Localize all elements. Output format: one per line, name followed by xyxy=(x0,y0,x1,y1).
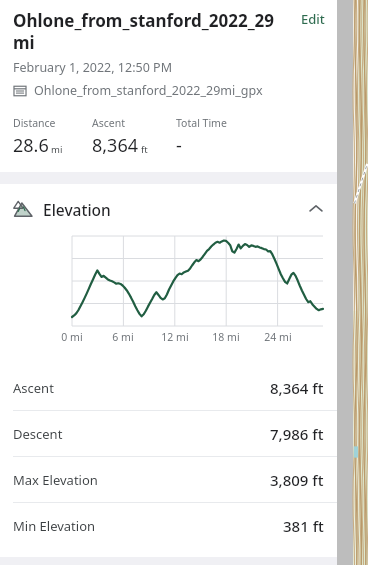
staticText: Ascent xyxy=(13,379,270,397)
staticText: Edit xyxy=(301,10,325,28)
button[interactable]: Elevation xyxy=(0,184,337,234)
staticText: ft xyxy=(141,143,148,156)
staticText: 12 mi xyxy=(161,330,189,344)
staticText: Ohlone_from_stanford_2022_29mi_gpx xyxy=(34,82,263,99)
staticText: - xyxy=(176,133,182,158)
staticText: 8,364 xyxy=(92,133,139,158)
staticText: 3,809 ft xyxy=(270,470,324,490)
staticText: 6 mi xyxy=(112,330,134,344)
staticText: mi xyxy=(51,143,63,156)
staticText: 18 mi xyxy=(212,330,240,344)
staticText: Distance xyxy=(13,116,56,130)
staticText: 8,364 ft xyxy=(270,378,324,398)
staticText: Descent xyxy=(13,425,270,443)
staticText: 381 ft xyxy=(283,516,324,536)
staticText: Total Time xyxy=(176,116,227,130)
button[interactable]: Edit xyxy=(293,9,327,32)
staticText: Ohlone_from_stanford_2022_29 mi xyxy=(13,9,293,54)
button[interactable]: Descent xyxy=(0,411,337,456)
button[interactable]: Max Elevation xyxy=(0,457,337,502)
button[interactable]: Min Elevation xyxy=(0,503,337,548)
staticText: Ascent xyxy=(92,116,125,130)
button[interactable]: Ascent xyxy=(0,365,337,410)
staticText: 0 mi xyxy=(61,330,83,344)
staticText: 28.6 xyxy=(13,133,49,158)
staticText: February 1, 2022, 12:50 PM xyxy=(13,59,172,76)
staticText: Min Elevation xyxy=(13,517,283,535)
staticText: Max Elevation xyxy=(13,471,270,489)
staticText: 24 mi xyxy=(264,330,292,344)
staticText: 7,986 ft xyxy=(270,424,324,444)
staticText: Elevation xyxy=(43,199,308,220)
other: Collapse Elevation xyxy=(308,201,324,217)
